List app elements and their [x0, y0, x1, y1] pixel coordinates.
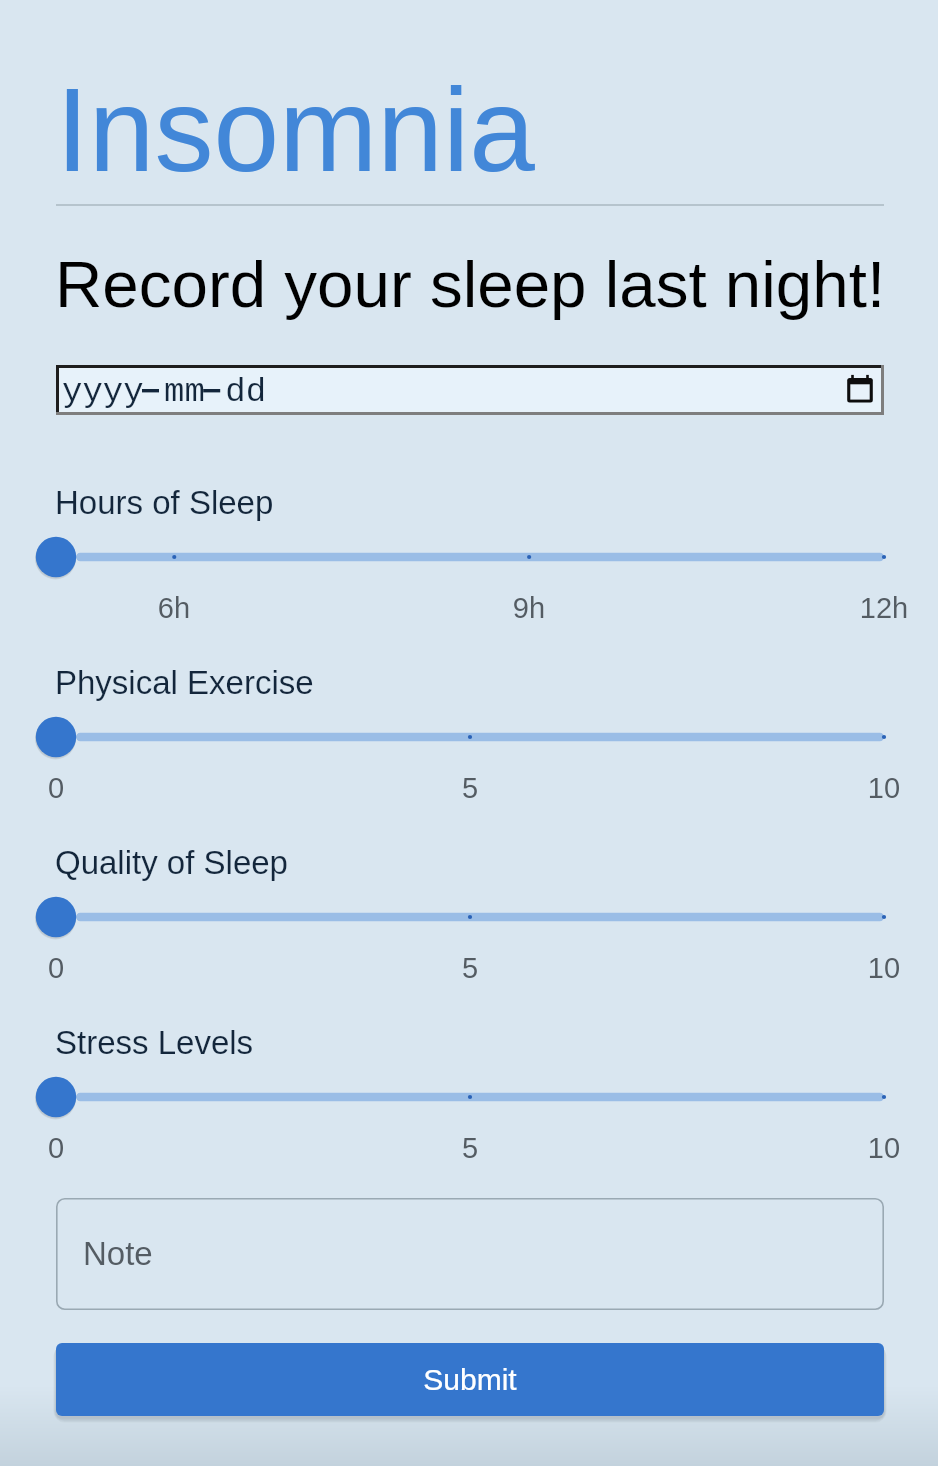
- button[interactable]: yyyy mm dd: [56, 365, 884, 415]
- staticText: 0: [0, 952, 186, 984]
- staticText: Insomnia: [56, 64, 535, 196]
- staticText: 10: [754, 1132, 938, 1164]
- button[interactable]: Note: [56, 1198, 884, 1310]
- staticText: 5: [340, 1132, 600, 1164]
- staticText: 5: [340, 772, 600, 804]
- staticText: 9h: [399, 592, 659, 624]
- staticText: 0: [0, 1132, 186, 1164]
- staticText: 6h: [44, 592, 304, 624]
- staticText: Quality of Sleep: [55, 844, 288, 881]
- button[interactable]: Submit: [56, 1343, 884, 1416]
- button[interactable]: Stress Levels: [36, 1075, 904, 1119]
- staticText: 10: [754, 952, 938, 984]
- staticText: Physical Exercise: [55, 664, 314, 701]
- staticText: yyyy mm dd: [62, 373, 267, 412]
- staticText: Note: [83, 1235, 153, 1272]
- staticText: 5: [340, 952, 600, 984]
- staticText: 12h: [754, 592, 938, 624]
- staticText: 0: [0, 772, 186, 804]
- staticText: Stress Levels: [55, 1024, 254, 1061]
- button[interactable]: Physical Exercise: [36, 715, 904, 759]
- button[interactable]: Quality of Sleep: [36, 895, 904, 939]
- staticText: Record your sleep last night!: [55, 248, 886, 321]
- staticText: Hours of Sleep: [55, 484, 274, 521]
- staticText: 10: [754, 772, 938, 804]
- button[interactable]: Show date picker: [843, 371, 877, 409]
- button[interactable]: Hours of Sleep: [36, 535, 904, 579]
- staticText: Submit: [340, 1363, 600, 1397]
